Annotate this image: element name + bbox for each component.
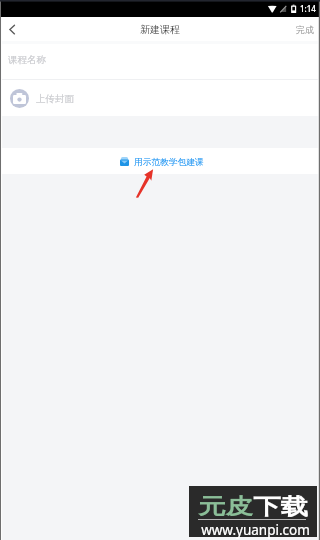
staticText: 课程名称 [8,54,46,66]
staticText: 下载 [253,493,308,520]
staticText: www.yuanpi.com [201,521,310,539]
staticText: 元皮 [198,493,253,520]
staticText: 1:14 [300,3,316,14]
button[interactable]: 完成 [289,20,320,39]
staticText: 完成 [296,24,314,35]
button[interactable]: 上传封面 [0,80,320,116]
button[interactable]: 用示范教学包建课 [0,148,320,174]
staticText: 新建课程 [140,23,180,36]
staticText: 用示范教学包建课 [134,157,204,168]
button[interactable]: 课程名称 [0,44,320,79]
button[interactable]: Back [0,17,24,41]
staticText: 上传封面 [36,93,74,105]
